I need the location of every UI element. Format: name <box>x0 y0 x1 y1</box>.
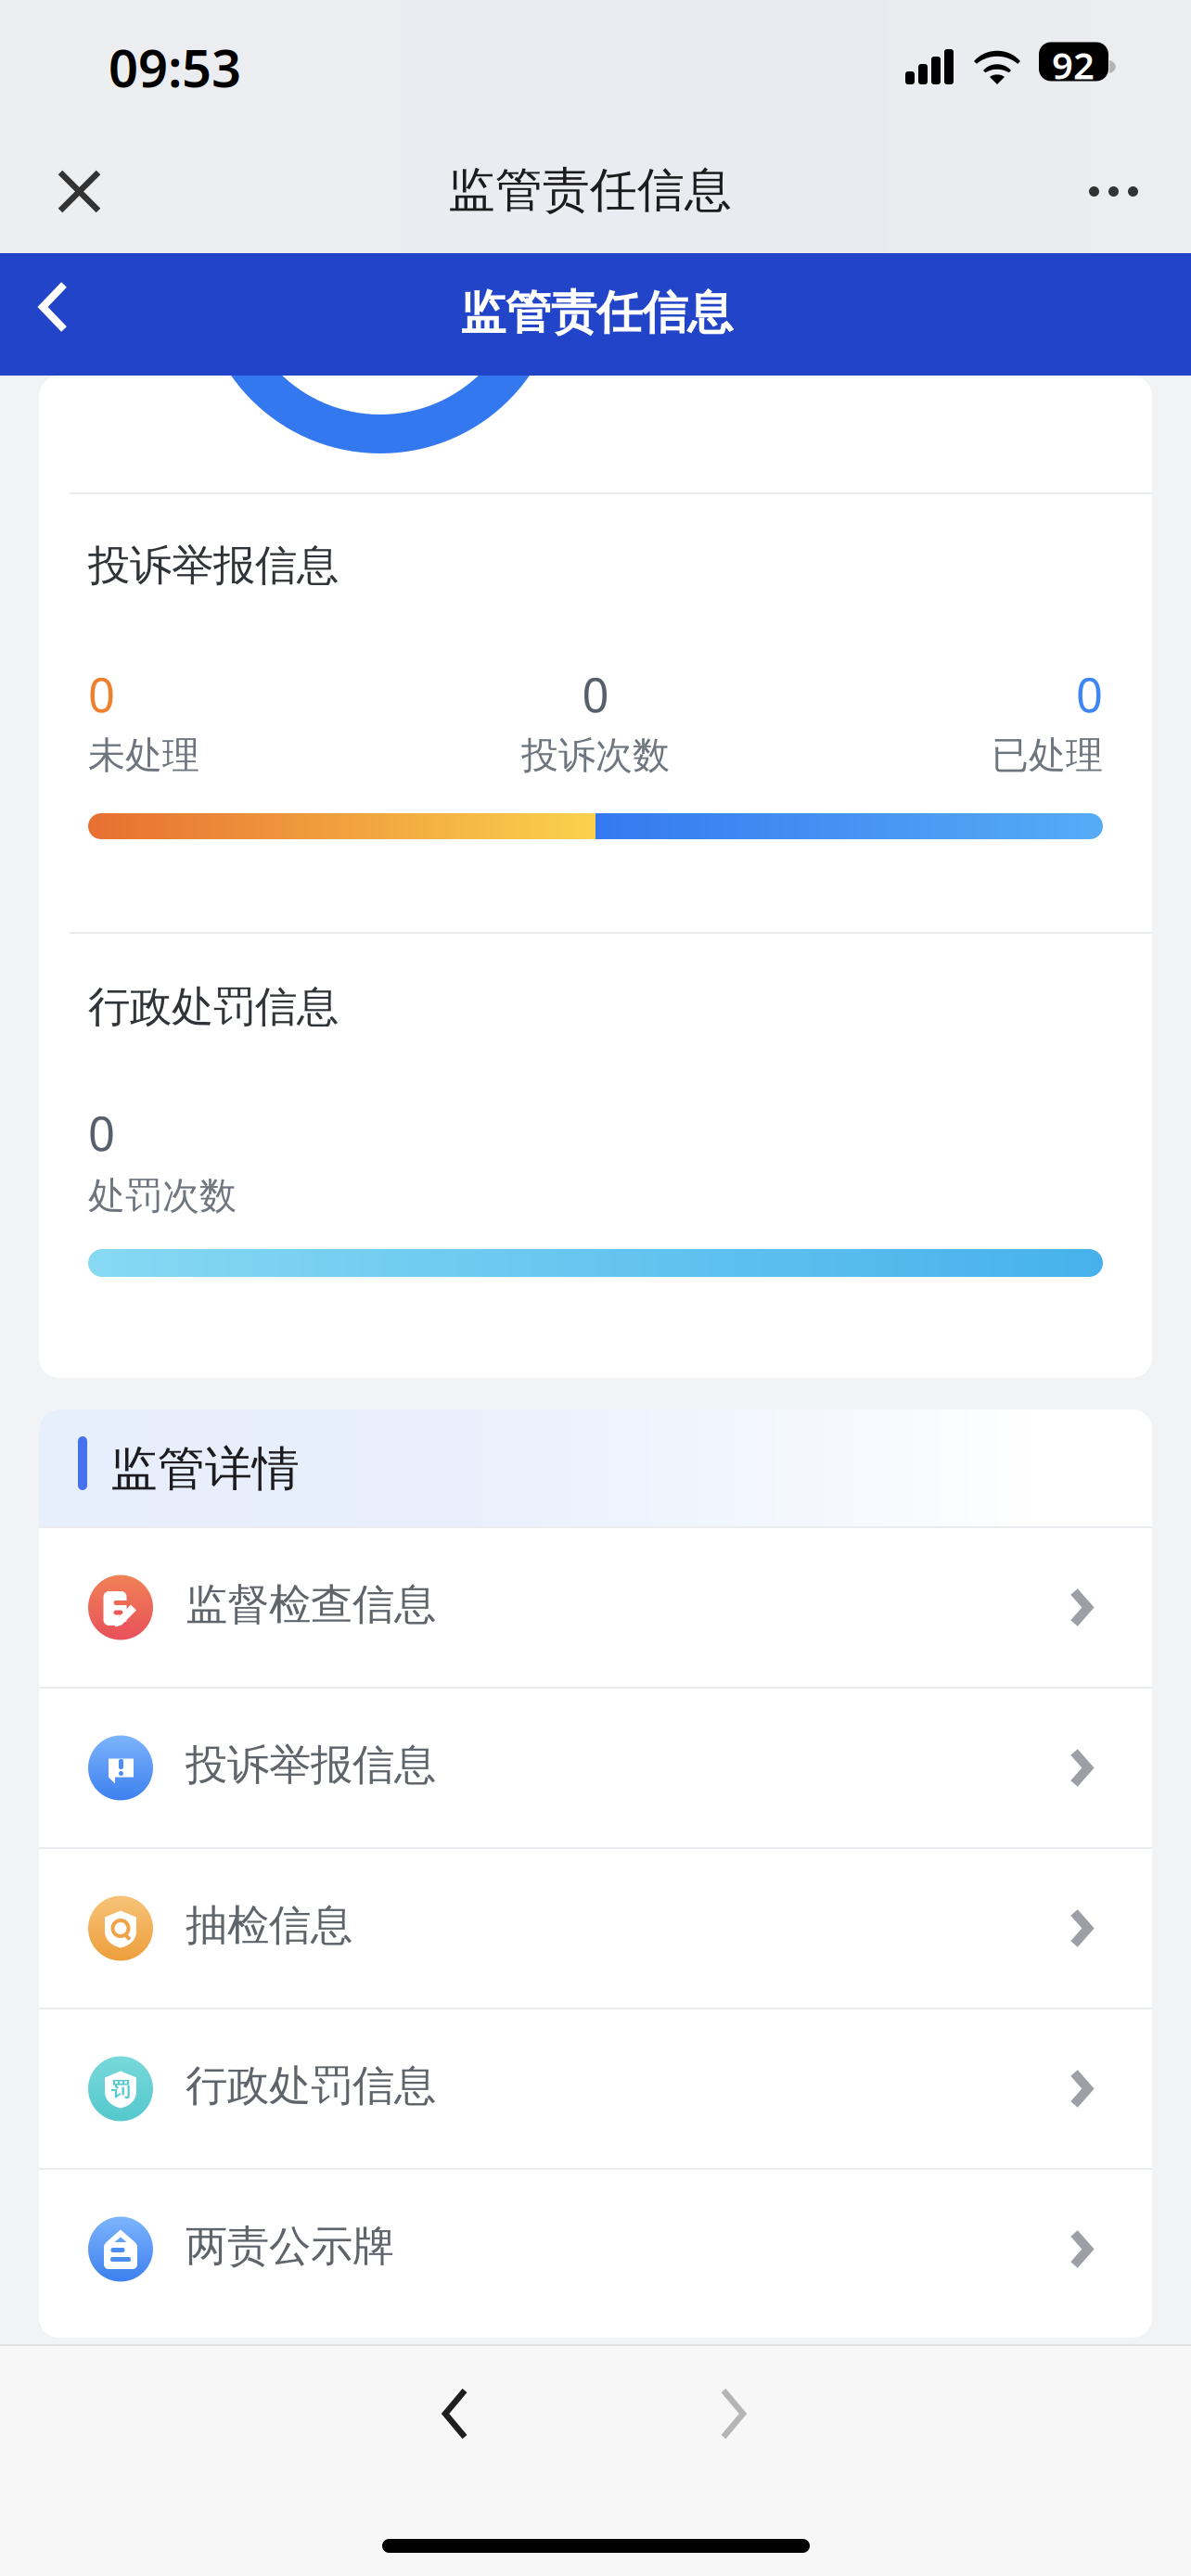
staticText: 投诉举报信息 <box>186 1739 436 1791</box>
staticText: 0 <box>88 1102 115 1164</box>
staticText: 92 <box>1052 40 1095 89</box>
staticText: 抽检信息 <box>186 1900 352 1951</box>
button[interactable]: Back <box>403 2350 506 2478</box>
staticText: 未处理 <box>88 733 199 778</box>
staticText: 行政处罚信息 <box>88 981 339 1033</box>
staticText: 行政处罚信息 <box>186 2060 436 2112</box>
staticText: 监督检查信息 <box>186 1579 436 1631</box>
staticText: 0 <box>582 663 609 725</box>
staticText: 投诉次数 <box>521 733 670 778</box>
staticText: 监管责任信息 <box>460 285 733 341</box>
staticText: 两责公示牌 <box>186 2221 394 2272</box>
button[interactable]: 抽检信息 <box>39 1849 1152 2008</box>
button[interactable]: Close <box>23 143 135 240</box>
button[interactable]: Forward <box>682 2350 785 2478</box>
staticText: 0 <box>88 663 115 725</box>
staticText: 0 <box>1076 663 1103 725</box>
staticText: 投诉举报信息 <box>88 540 339 591</box>
staticText: 处罚次数 <box>88 1173 237 1219</box>
staticText: 09:53 <box>109 32 241 101</box>
staticText: 罚 <box>111 2077 130 2102</box>
staticText: 监管责任信息 <box>448 161 732 219</box>
button[interactable]: Back <box>6 246 100 368</box>
button[interactable]: 罚 <box>39 2009 1152 2168</box>
button[interactable]: More <box>1058 144 1169 239</box>
staticText: 监管详情 <box>110 1440 300 1498</box>
button[interactable]: 两责公示牌 <box>39 2170 1152 2328</box>
button[interactable]: 投诉举报信息 <box>39 1689 1152 1847</box>
staticText: 已处理 <box>992 733 1103 778</box>
button[interactable]: 监督检查信息 <box>39 1528 1152 1687</box>
